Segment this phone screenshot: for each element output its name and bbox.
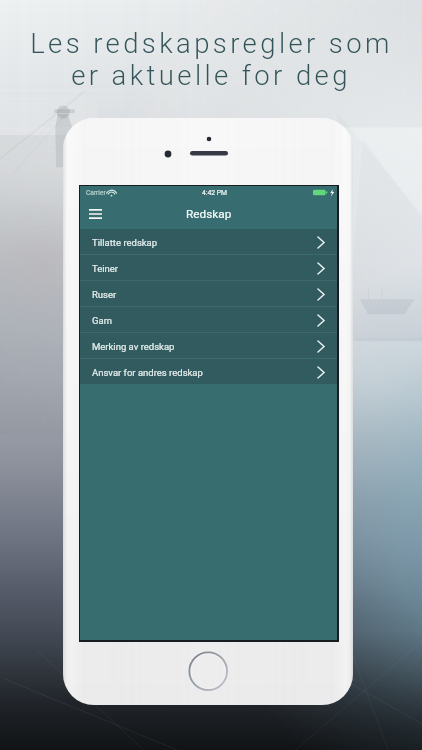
staticText: Teiner	[92, 263, 119, 274]
staticText: Ansvar for andres redskap	[92, 367, 203, 378]
staticText: Les redskapsregler som	[30, 27, 393, 59]
button[interactable]: Merking av redskap	[80, 333, 337, 359]
button[interactable]: Ansvar for andres redskap	[80, 359, 337, 385]
staticText: Tillatte redskap	[92, 237, 158, 248]
staticText: Redskap	[186, 207, 232, 221]
button[interactable]: Ruser	[80, 281, 337, 307]
staticText: 4:42 PM	[202, 189, 228, 197]
button[interactable]: Teiner	[80, 255, 337, 281]
staticText: Merking av redskap	[92, 341, 175, 352]
staticText: Ruser	[92, 289, 117, 300]
staticText: Carrier	[86, 189, 106, 197]
button[interactable]: Open navigation menu	[83, 201, 107, 227]
button[interactable]: Garn	[80, 307, 337, 333]
staticText: Garn	[92, 315, 113, 326]
staticText: er aktuelle for deg	[71, 59, 351, 91]
button[interactable]: Tillatte redskap	[80, 229, 337, 255]
